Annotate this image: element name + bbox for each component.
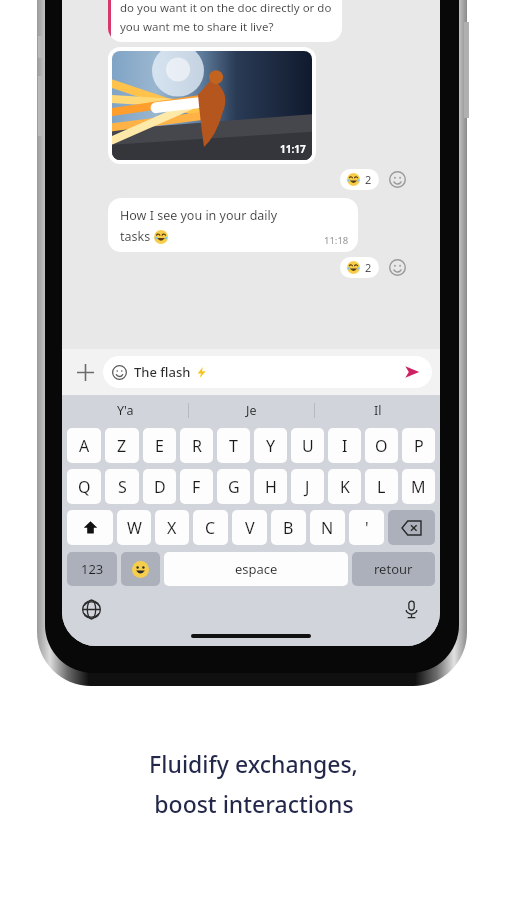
staticText: tasks xyxy=(120,228,154,245)
staticText: Q xyxy=(78,476,91,498)
staticText: 2 xyxy=(365,172,372,187)
button[interactable]: Je xyxy=(189,395,314,425)
staticText: Fluidify exchanges, xyxy=(149,748,358,779)
button[interactable]: E xyxy=(143,428,176,463)
staticText: L xyxy=(377,476,386,498)
button[interactable]: T xyxy=(217,428,250,463)
staticText: you want me to share it live? xyxy=(120,19,274,35)
button[interactable]: R xyxy=(180,428,213,463)
button[interactable]: retour xyxy=(352,552,435,586)
staticText: ' xyxy=(365,517,369,539)
button[interactable]: H xyxy=(254,469,287,504)
button[interactable]: G xyxy=(217,469,250,504)
button[interactable]: N xyxy=(310,510,345,545)
button[interactable]: Add reaction xyxy=(389,259,406,276)
button[interactable]: L xyxy=(365,469,398,504)
button[interactable]: S xyxy=(105,469,139,504)
button[interactable]: Send xyxy=(401,361,423,383)
staticText: Il xyxy=(374,402,382,419)
button[interactable]: O xyxy=(365,428,398,463)
button[interactable]: Z xyxy=(105,428,139,463)
button[interactable]: How I see you in your daily xyxy=(108,198,358,252)
staticText: O xyxy=(375,435,388,457)
staticText: W xyxy=(127,517,142,539)
staticText: 123 xyxy=(81,560,104,578)
button[interactable]: A xyxy=(67,428,101,463)
button[interactable]: D xyxy=(143,469,176,504)
staticText: E xyxy=(155,435,164,457)
button[interactable]: F xyxy=(180,469,213,504)
button[interactable]: B xyxy=(271,510,306,545)
button[interactable]: 123 xyxy=(67,552,117,586)
staticText: espace xyxy=(235,560,278,578)
button[interactable]: M xyxy=(402,469,435,504)
button[interactable]: C xyxy=(193,510,228,545)
button[interactable]: J xyxy=(291,469,324,504)
staticText: Z xyxy=(117,435,127,457)
staticText: boost interactions xyxy=(154,788,354,819)
staticText: P xyxy=(414,435,424,457)
button[interactable]: P xyxy=(402,428,435,463)
button[interactable]: Change keyboard language xyxy=(76,594,106,624)
button[interactable]: Add attachment xyxy=(70,357,100,387)
button[interactable]: Y'a xyxy=(62,395,188,425)
staticText: S xyxy=(118,476,127,498)
staticText: B xyxy=(283,517,294,539)
staticText: G xyxy=(228,476,240,498)
button[interactable]: I xyxy=(328,428,361,463)
staticText: do you want it on the doc directly or do xyxy=(120,0,332,16)
button[interactable]: do you want it on the doc directly or do xyxy=(108,0,342,42)
staticText: M xyxy=(411,476,426,498)
button[interactable]: Q xyxy=(67,469,101,504)
button[interactable]: V xyxy=(232,510,267,545)
button[interactable]: Dictation xyxy=(396,594,426,624)
button[interactable]: 11:17 xyxy=(112,51,312,160)
staticText: V xyxy=(245,517,255,539)
button[interactable]: Add reaction xyxy=(389,171,406,188)
staticText: R xyxy=(192,435,202,457)
staticText: Y'a xyxy=(117,402,134,419)
button[interactable]: 2 xyxy=(340,169,379,190)
staticText: N xyxy=(321,517,334,539)
staticText: J xyxy=(305,476,310,498)
staticText: 11:17 xyxy=(280,142,306,156)
staticText: C xyxy=(205,517,216,539)
button[interactable]: The flash xyxy=(103,356,432,388)
button[interactable]: Il xyxy=(315,395,440,425)
staticText: U xyxy=(302,435,314,457)
staticText: D xyxy=(154,476,166,498)
staticText: A xyxy=(79,435,90,457)
button[interactable]: espace xyxy=(164,552,348,586)
button[interactable]: X xyxy=(155,510,189,545)
button[interactable]: W xyxy=(117,510,151,545)
button[interactable]: Emoji xyxy=(121,552,160,586)
staticText: F xyxy=(192,476,201,498)
button[interactable]: Shift xyxy=(67,510,113,545)
staticText: The flash xyxy=(134,363,191,381)
staticText: 11:18 xyxy=(324,234,349,247)
button[interactable]: ' xyxy=(349,510,384,545)
staticText: T xyxy=(229,435,238,457)
staticText: retour xyxy=(374,560,413,578)
staticText: K xyxy=(340,476,350,498)
staticText: H xyxy=(265,476,277,498)
staticText: Y xyxy=(266,435,276,457)
staticText: Je xyxy=(246,402,257,419)
staticText: X xyxy=(167,517,177,539)
button[interactable]: Backspace xyxy=(388,510,435,545)
staticText: How I see you in your daily xyxy=(120,207,278,224)
button[interactable]: 2 xyxy=(340,257,379,278)
staticText: I xyxy=(342,435,348,457)
button[interactable]: Y xyxy=(254,428,287,463)
staticText: 2 xyxy=(365,260,372,275)
button[interactable]: U xyxy=(291,428,324,463)
button[interactable]: K xyxy=(328,469,361,504)
